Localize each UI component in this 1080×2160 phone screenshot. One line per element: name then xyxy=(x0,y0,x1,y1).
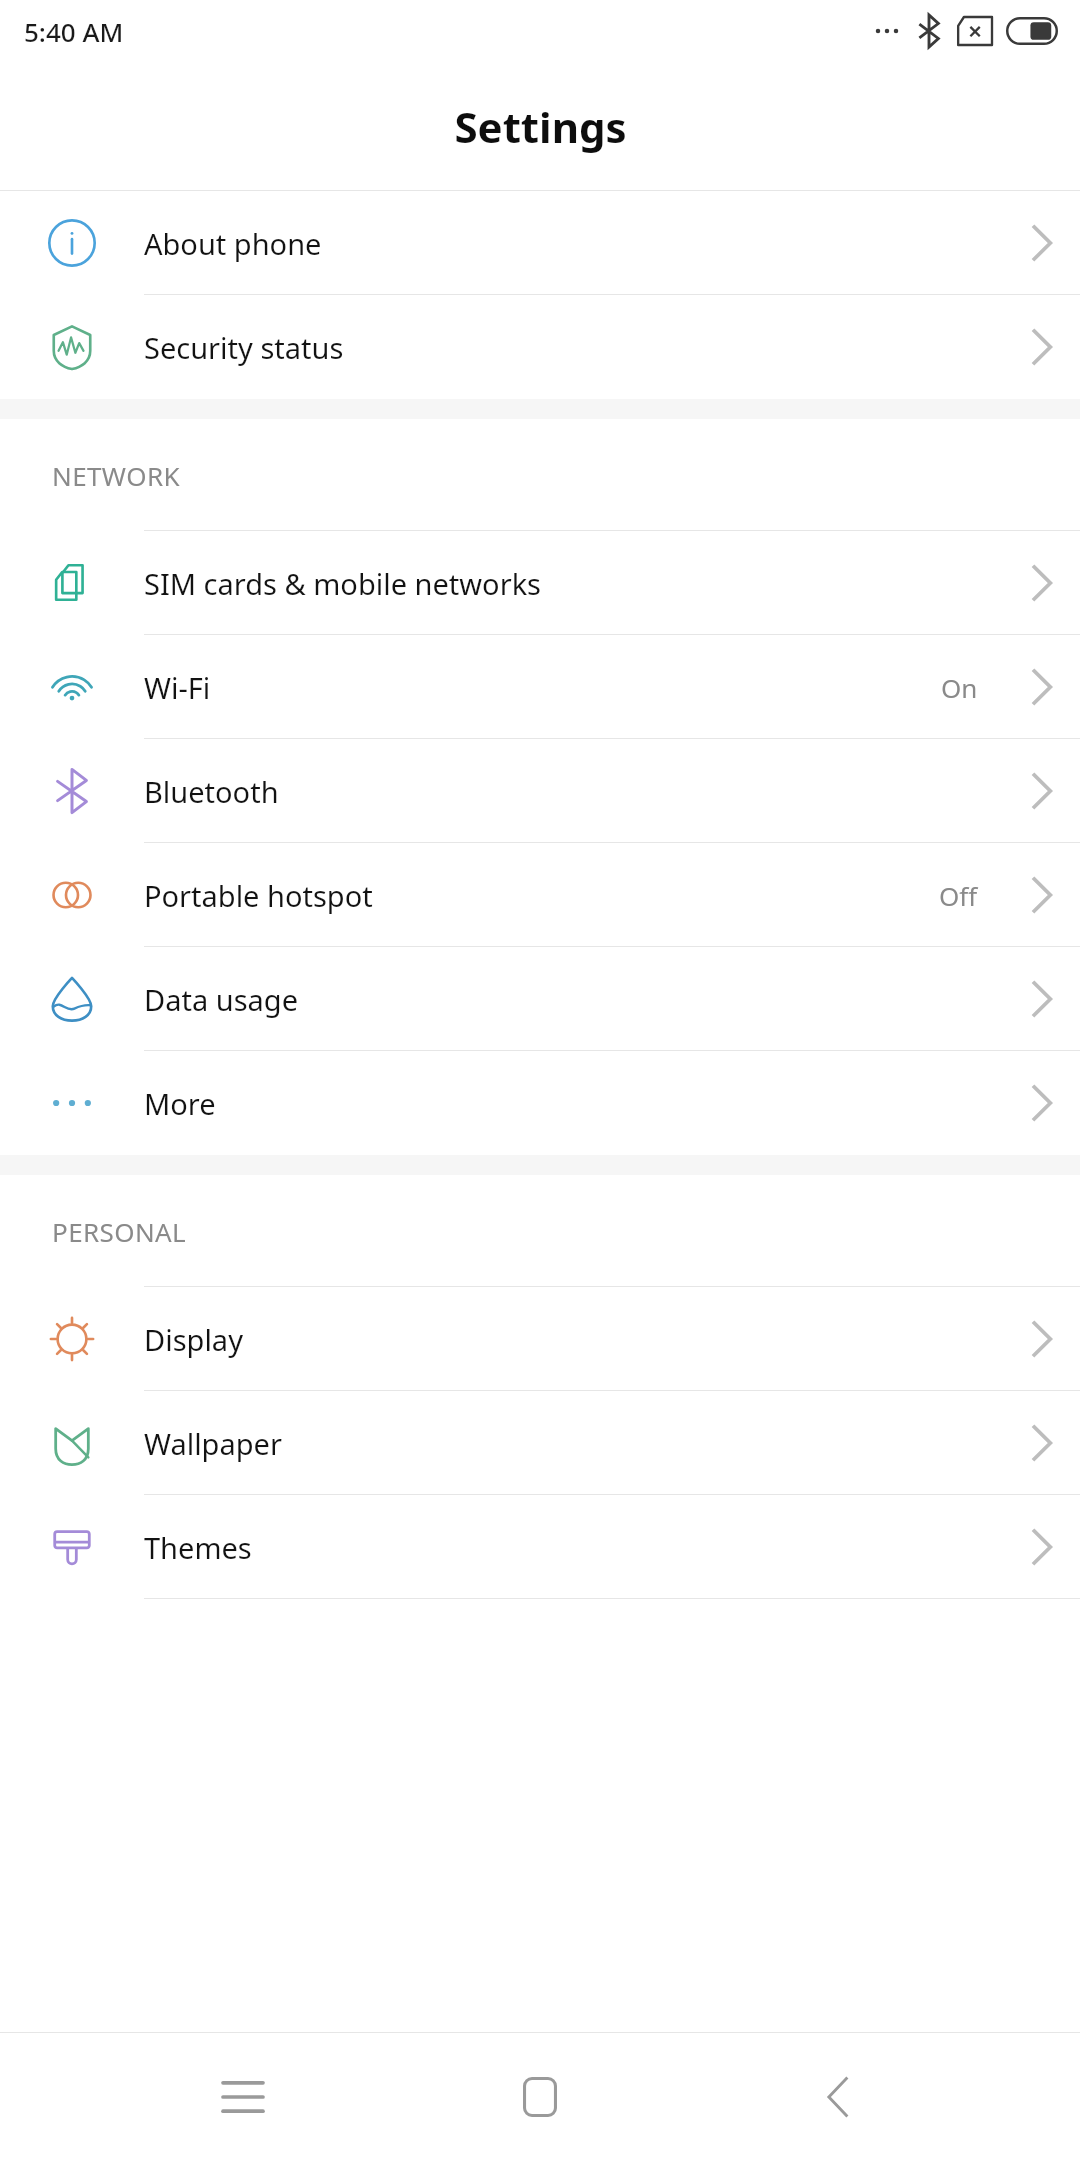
staticText: Data usage xyxy=(144,980,298,1019)
button[interactable]: Display xyxy=(0,1287,1080,1391)
staticText: Themes xyxy=(144,1528,252,1567)
button[interactable]: About phone xyxy=(0,191,1080,295)
button[interactable]: Security status xyxy=(0,295,1080,399)
staticText: Display xyxy=(144,1320,243,1359)
button[interactable]: SIM cards & mobile networks xyxy=(0,531,1080,635)
staticText: More xyxy=(144,1084,216,1123)
button[interactable]: Recents xyxy=(188,2042,298,2152)
button[interactable]: Bluetooth xyxy=(0,739,1080,843)
staticText: Security status xyxy=(144,328,344,367)
staticText: Portable hotspot xyxy=(144,876,373,915)
staticText: Bluetooth xyxy=(144,772,279,811)
staticText: On xyxy=(941,670,978,705)
button[interactable]: Back xyxy=(783,2042,893,2152)
staticText: 5:40 AM xyxy=(24,14,124,49)
button[interactable]: Data usage xyxy=(0,947,1080,1051)
button[interactable]: Themes xyxy=(0,1495,1080,1599)
button[interactable]: Portable hotspot xyxy=(0,843,1080,947)
button[interactable]: Home xyxy=(485,2042,595,2152)
button[interactable]: Wallpaper xyxy=(0,1391,1080,1495)
staticText: About phone xyxy=(144,224,322,263)
staticText: Wi-Fi xyxy=(144,668,211,707)
staticText: SIM cards & mobile networks xyxy=(144,564,542,603)
button[interactable]: More xyxy=(0,1051,1080,1155)
button[interactable]: Wi-Fi xyxy=(0,635,1080,739)
staticText: Settings xyxy=(454,98,627,155)
staticText: NETWORK xyxy=(52,458,180,493)
staticText: PERSONAL xyxy=(52,1214,187,1249)
staticText: Wallpaper xyxy=(144,1424,282,1463)
staticText: Off xyxy=(939,878,978,913)
